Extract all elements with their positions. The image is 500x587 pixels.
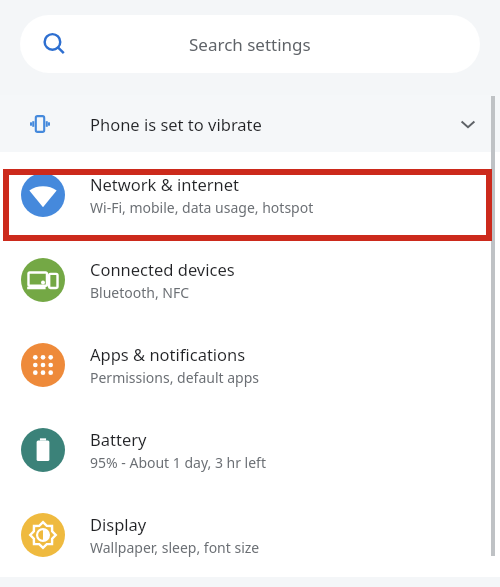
button[interactable]: Apps & notifications — [0, 322, 500, 407]
staticText: Apps & notifications — [90, 343, 246, 365]
staticText: Wi-Fi, mobile, data usage, hotspot — [90, 198, 314, 217]
staticText: Display — [90, 513, 147, 535]
button[interactable]: Display — [0, 492, 500, 577]
button[interactable]: Network & internet — [0, 152, 500, 237]
staticText: Bluetooth, NFC — [90, 283, 190, 302]
staticText: Battery — [90, 428, 147, 450]
button[interactable]: Connected devices — [0, 237, 500, 322]
staticText: 95% - About 1 day, 3 hr left — [90, 453, 266, 472]
staticText: Connected devices — [90, 258, 235, 280]
staticText: Network & internet — [90, 173, 240, 195]
other: Expand — [458, 114, 478, 134]
staticText: Wallpaper, sleep, font size — [90, 538, 260, 557]
staticText: Phone is set to vibrate — [90, 113, 262, 135]
staticText: Search settings — [189, 33, 311, 56]
button[interactable]: Search settings — [20, 15, 480, 73]
button[interactable]: Battery — [0, 407, 500, 492]
staticText: Permissions, default apps — [90, 368, 260, 387]
button[interactable]: Phone is set to vibrate — [0, 95, 500, 152]
